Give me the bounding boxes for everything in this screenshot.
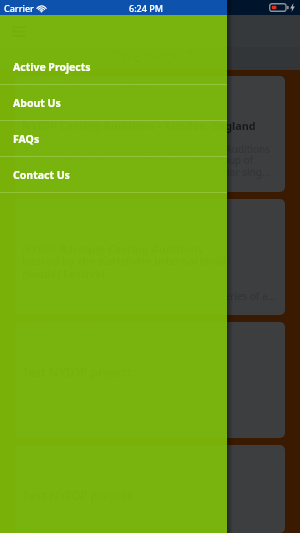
- staticText: Contact Us: [13, 168, 70, 182]
- button[interactable]: 23 - 24th February 2018: [15, 76, 285, 192]
- staticText: 23 - 24th February 2018: [22, 82, 150, 98]
- staticText: For the first time ever, we are producin…: [22, 289, 276, 303]
- staticText: NYIOP Casting Auditions – London, Englan…: [22, 118, 256, 133]
- button[interactable]: Range testing: [15, 322, 285, 438]
- button[interactable]: 23 - 24th February 2018: [15, 199, 285, 315]
- button[interactable]: Active Projects: [0, 49, 227, 85]
- staticText: Active Projects: [13, 60, 91, 74]
- staticText: FAQs: [13, 132, 40, 146]
- button[interactable]: FAQs: [0, 121, 227, 157]
- staticText: Carrier: [4, 2, 34, 14]
- staticText: 6:24 PM: [129, 2, 163, 14]
- staticText: After the AMAZINGLY SUCCESSFUL London Au…: [22, 142, 270, 179]
- button[interactable]: About Us: [0, 85, 227, 121]
- staticText: About Us: [13, 96, 61, 110]
- button[interactable]: Range testing: [15, 445, 285, 533]
- button[interactable]: Contact Us: [0, 157, 227, 193]
